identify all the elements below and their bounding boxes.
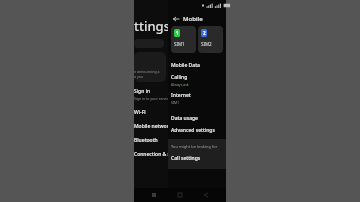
staticText: SIM2 (201, 41, 212, 47)
staticText: SIM1 (171, 100, 180, 105)
button[interactable]: Sign in (134, 88, 226, 101)
button[interactable]: 2 (198, 26, 223, 53)
button[interactable]: Calling (168, 71, 226, 89)
staticText: Mobile network (183, 15, 226, 23)
button[interactable]: Home (174, 189, 186, 201)
staticText: Sign in to your services (134, 96, 172, 101)
staticText: o you (134, 74, 144, 79)
button[interactable]: Mobile Data (168, 59, 226, 71)
button[interactable]: Back (200, 189, 212, 201)
button[interactable]: n announcing a (134, 52, 166, 82)
staticText: 2 (203, 30, 206, 36)
button[interactable]: Internet (168, 89, 226, 107)
button[interactable]: Advanced settings (168, 124, 226, 136)
staticText: Connection & share (134, 151, 181, 158)
staticText: Internet (171, 92, 191, 99)
staticText: Wi-Fi (134, 109, 146, 116)
staticText: SIM1 (174, 41, 185, 47)
button[interactable]: Mobile network (134, 123, 226, 130)
staticText: Sign in (134, 88, 151, 95)
staticText: n announcing a (134, 69, 160, 74)
staticText: 1 (176, 30, 179, 36)
button[interactable]: 1 (171, 26, 196, 53)
button[interactable]: Call settings (171, 155, 226, 162)
button[interactable]: Connection & share (134, 151, 226, 158)
staticText: Mobile network (134, 123, 172, 130)
button[interactable]: Recents (148, 189, 160, 201)
button[interactable]: Back (171, 14, 181, 24)
button[interactable]: Wi-Fi (134, 109, 226, 116)
staticText: Call settings (171, 155, 201, 162)
staticText: Bluetooth (134, 137, 158, 144)
staticText: ttings (134, 17, 170, 35)
staticText: You might be looking for (171, 144, 218, 149)
button[interactable]: Bluetooth (134, 137, 226, 144)
staticText: Mobile Data (171, 62, 200, 69)
button[interactable]: Data usage (168, 112, 226, 124)
staticText: Always ask (171, 82, 189, 87)
staticText: Data usage (171, 115, 198, 122)
staticText: Calling (171, 74, 188, 81)
staticText: Advanced settings (171, 127, 215, 134)
